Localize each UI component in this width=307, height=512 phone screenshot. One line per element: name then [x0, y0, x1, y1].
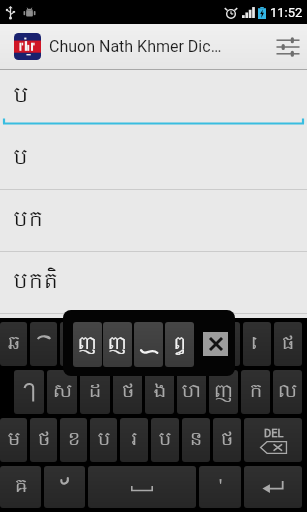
- staticText: DEL: [264, 427, 284, 440]
- button[interactable]: ថ: [213, 418, 241, 462]
- button[interactable]: បក: [0, 190, 307, 252]
- button[interactable]: ញ: [209, 370, 238, 414]
- button[interactable]: Delete: [244, 418, 302, 462]
- button[interactable]: ោ: [243, 322, 271, 366]
- staticText: រ: [100, 329, 107, 360]
- staticText: ញ: [77, 329, 98, 360]
- staticText: ថ: [37, 425, 51, 456]
- button[interactable]: [134, 322, 163, 367]
- button[interactable]: ម: [0, 418, 27, 462]
- button[interactable]: យ: [150, 322, 178, 366]
- staticText: ថ: [220, 425, 234, 456]
- staticText: ញ: [213, 377, 234, 408]
- button[interactable]: ផ: [274, 322, 302, 366]
- button[interactable]: ប: [0, 70, 307, 128]
- button[interactable]: Enter: [244, 466, 302, 508]
- staticText: ប: [13, 142, 29, 176]
- staticText: យ: [154, 329, 175, 360]
- staticText: ស: [52, 377, 73, 408]
- staticText: ឝ: [14, 472, 28, 503]
- button[interactable]: ថ: [30, 418, 57, 462]
- staticText: ក: [249, 377, 263, 408]
- staticText: ': [218, 472, 223, 503]
- button[interactable]: ឆ: [0, 322, 27, 366]
- button[interactable]: ដ: [80, 370, 110, 414]
- button[interactable]: ញ: [73, 322, 102, 367]
- staticText: ហ: [181, 377, 202, 408]
- staticText: រ: [131, 425, 138, 456]
- staticText: ញ: [107, 329, 128, 360]
- button[interactable]: ល: [273, 370, 302, 414]
- staticText: ខ: [67, 425, 81, 456]
- button[interactable]: Key: [30, 322, 57, 366]
- staticText: ន: [189, 425, 203, 456]
- button[interactable]: Close: [203, 332, 228, 356]
- staticText: ម: [7, 425, 21, 456]
- staticText: Chuon Nath Khmer Dic…: [49, 37, 222, 56]
- button[interactable]: Key: [14, 370, 44, 414]
- button[interactable]: រ: [120, 418, 148, 462]
- button[interactable]: ': [199, 466, 241, 508]
- button[interactable]: Key: [181, 322, 209, 366]
- button[interactable]: ឰ: [165, 322, 194, 367]
- staticText: ប: [97, 425, 111, 456]
- button[interactable]: ស: [47, 370, 77, 414]
- button[interactable]: ន: [182, 418, 210, 462]
- button[interactable]: Space: [88, 466, 196, 508]
- button[interactable]: ក: [241, 370, 270, 414]
- button[interactable]: Key: [44, 466, 85, 508]
- button[interactable]: ថ: [113, 370, 142, 414]
- staticText: បក: [13, 204, 44, 238]
- button[interactable]: ខ: [60, 418, 87, 462]
- button[interactable]: ត: [120, 322, 147, 366]
- staticText: ល: [277, 377, 298, 408]
- button[interactable]: ញ: [103, 322, 132, 367]
- button[interactable]: ប: [151, 418, 179, 462]
- staticText: ដ: [88, 377, 102, 408]
- staticText: 11:52: [270, 5, 303, 20]
- button[interactable]: រ: [90, 322, 117, 366]
- staticText: ថ: [121, 377, 135, 408]
- button[interactable]: េ: [60, 322, 87, 366]
- staticText: ប: [158, 425, 172, 456]
- staticText: ផ: [281, 329, 295, 360]
- staticText: េ: [70, 329, 77, 360]
- button[interactable]: ឝ: [0, 466, 41, 508]
- button[interactable]: ប: [0, 128, 307, 190]
- staticText: ង: [153, 377, 167, 408]
- staticText: បកតិ: [13, 266, 59, 300]
- staticText: ឆ: [7, 329, 21, 360]
- button[interactable]: Settings: [268, 24, 307, 69]
- staticText: ោ: [250, 329, 264, 360]
- button[interactable]: បកតិ: [0, 252, 307, 314]
- staticText: ឰ: [173, 329, 187, 360]
- button[interactable]: ប: [90, 418, 117, 462]
- staticText: ប: [13, 78, 29, 114]
- button[interactable]: ង: [145, 370, 174, 414]
- button[interactable]: ហ: [177, 370, 206, 414]
- button[interactable]: Key: [212, 322, 240, 366]
- staticText: ត: [127, 329, 141, 360]
